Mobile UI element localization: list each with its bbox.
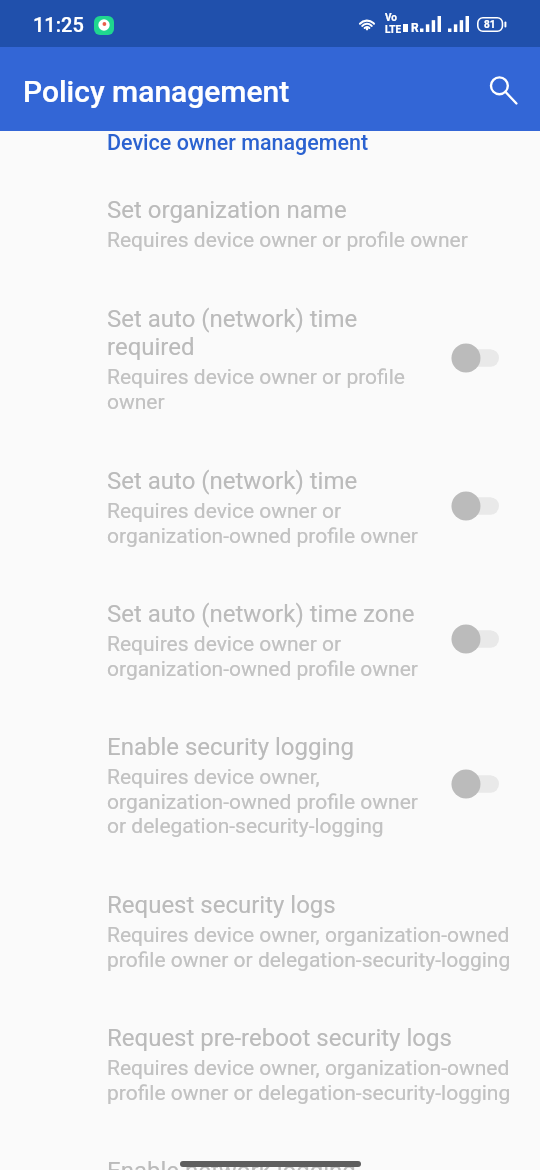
- staticText: Requires device owner or organization-ow…: [107, 499, 431, 548]
- staticText: Requires device owner, organization-owne…: [107, 765, 431, 838]
- staticText: Enable security logging: [107, 733, 355, 761]
- staticText: Requires device owner or organization-ow…: [107, 632, 431, 681]
- button[interactable]: Request security logs: [0, 864, 540, 998]
- staticText: Enable network logging: [107, 1157, 356, 1170]
- staticText: Requires device owner, organization-owne…: [107, 923, 515, 972]
- staticText: Requires device owner, organization-owne…: [107, 1056, 515, 1105]
- staticText: Device owner management: [107, 130, 369, 155]
- button[interactable]: Set organization name: [0, 168, 540, 279]
- button[interactable]: Set auto (network) time required: [0, 279, 540, 440]
- staticText: Set organization name: [107, 196, 347, 224]
- button[interactable]: Search: [464, 51, 540, 127]
- staticText: Request security logs: [107, 891, 336, 919]
- button[interactable]: Enable security logging: [0, 707, 540, 864]
- button[interactable]: Enable network logging: [0, 1131, 540, 1170]
- button[interactable]: Request pre-reboot security logs: [0, 998, 540, 1131]
- button[interactable]: Set auto (network) time: [0, 440, 540, 574]
- staticText: Set auto (network) time zone: [107, 600, 415, 628]
- staticText: Requires device owner or profile owner: [107, 365, 431, 414]
- staticText: 81: [484, 19, 496, 31]
- staticText: LTE: [385, 24, 402, 36]
- staticText: Requires device owner or profile owner: [107, 228, 468, 253]
- button[interactable]: Set auto (network) time zone: [0, 574, 540, 707]
- staticText: R: [411, 21, 419, 35]
- button[interactable]: Toggle: [443, 328, 515, 388]
- staticText: 11:25: [33, 13, 84, 36]
- staticText: Request pre-reboot security logs: [107, 1024, 452, 1052]
- staticText: Policy management: [23, 74, 290, 109]
- staticText: Set auto (network) time: [107, 467, 358, 495]
- button[interactable]: Toggle: [443, 754, 515, 814]
- button[interactable]: Toggle: [443, 476, 515, 536]
- button[interactable]: Toggle: [443, 609, 515, 669]
- staticText: Set auto (network) time required: [107, 305, 431, 361]
- staticText: Vo: [385, 12, 397, 24]
